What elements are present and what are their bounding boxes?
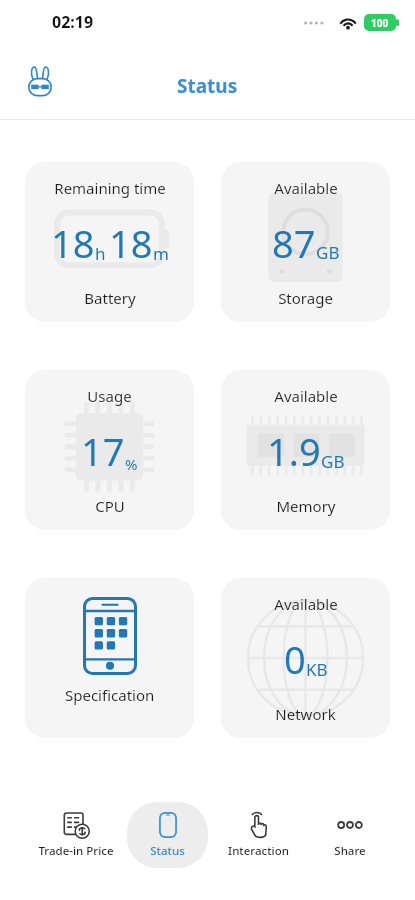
staticText: CPU bbox=[95, 496, 125, 516]
staticText: 100 bbox=[371, 16, 389, 30]
staticText: Trade-in Price bbox=[38, 843, 114, 859]
button[interactable]: Share bbox=[309, 802, 390, 868]
button[interactable]: Remaining time bbox=[25, 162, 194, 322]
button[interactable]: Specification bbox=[25, 578, 194, 738]
staticText: 18 bbox=[51, 217, 95, 269]
staticText: Share bbox=[334, 843, 366, 859]
staticText: Network bbox=[275, 704, 336, 724]
button[interactable]: Interaction bbox=[208, 802, 309, 868]
staticText: GB bbox=[321, 450, 345, 473]
staticText: Remaining time bbox=[54, 178, 166, 198]
staticText: 87 bbox=[272, 217, 316, 269]
button[interactable]: Status bbox=[127, 802, 208, 868]
staticText: Interaction bbox=[228, 843, 289, 859]
button[interactable]: Available bbox=[221, 578, 390, 738]
button[interactable]: Trade-in Price bbox=[25, 802, 127, 868]
staticText: Available bbox=[274, 178, 338, 198]
staticText: h bbox=[95, 242, 106, 265]
staticText: Usage bbox=[87, 386, 132, 406]
staticText: m bbox=[153, 242, 169, 265]
button[interactable]: Available bbox=[221, 162, 390, 322]
staticText: Status bbox=[177, 73, 238, 99]
button[interactable]: Usage bbox=[25, 370, 194, 530]
staticText: Battery bbox=[84, 288, 136, 308]
button[interactable]: App logo bbox=[20, 62, 60, 102]
staticText: KB bbox=[306, 658, 328, 681]
staticText: 02:19 bbox=[52, 11, 94, 33]
staticText: Available bbox=[274, 594, 338, 614]
staticText: Storage bbox=[278, 288, 333, 308]
staticText: Specification bbox=[65, 685, 155, 705]
staticText: 0 bbox=[284, 633, 306, 685]
staticText: 17 bbox=[81, 425, 125, 477]
staticText: % bbox=[125, 454, 138, 474]
staticText: Available bbox=[274, 386, 338, 406]
staticText: 18 bbox=[109, 217, 153, 269]
button[interactable]: Available bbox=[221, 370, 390, 530]
staticText: Status bbox=[150, 843, 185, 859]
staticText: Memory bbox=[276, 496, 336, 516]
staticText: GB bbox=[316, 241, 340, 264]
staticText: 1.9 bbox=[267, 425, 321, 477]
